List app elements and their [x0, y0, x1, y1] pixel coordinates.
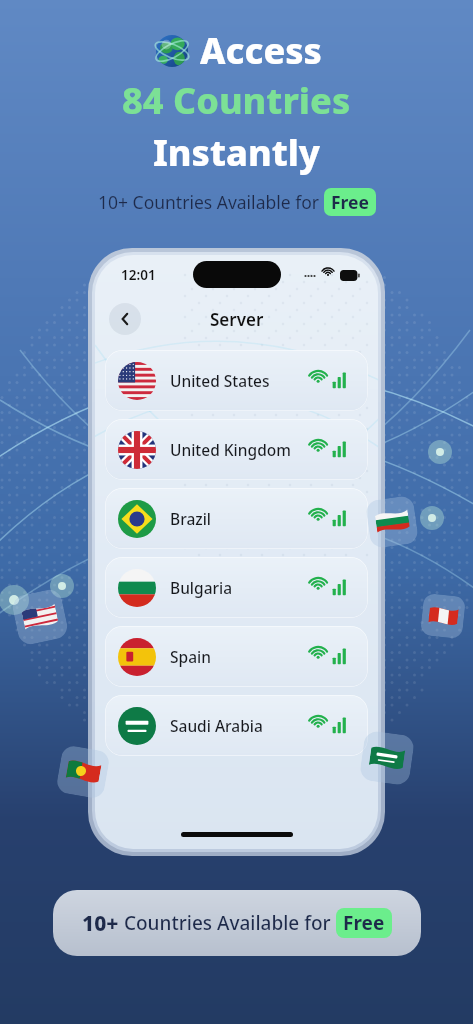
staticText: 10+ Countries Available for — [98, 190, 324, 214]
staticText: Server — [210, 308, 264, 331]
staticText: Instantly — [153, 128, 321, 177]
button[interactable]: Brazil — [105, 488, 368, 549]
staticText: Saudi Arabia — [170, 715, 263, 736]
button[interactable]: Spain — [105, 626, 368, 687]
staticText: Free — [331, 190, 369, 214]
staticText: United Kingdom — [170, 439, 291, 460]
staticText: 12:01 — [121, 266, 156, 284]
button[interactable]: United Kingdom — [105, 419, 368, 480]
staticText: 10+ — [82, 909, 119, 938]
staticText: United States — [170, 370, 270, 391]
button[interactable]: Saudi Arabia — [105, 695, 368, 756]
staticText: 84 Countries — [122, 76, 351, 125]
button[interactable]: United States — [105, 350, 368, 411]
staticText: Free — [343, 910, 385, 936]
staticText: Brazil — [170, 508, 212, 529]
staticText: Bulgaria — [170, 577, 233, 598]
staticText: Access — [200, 26, 322, 75]
staticText: Spain — [170, 646, 211, 667]
staticText: Countries Available for — [119, 910, 336, 936]
button[interactable]: Bulgaria — [105, 557, 368, 618]
button[interactable]: Back — [109, 303, 141, 335]
button[interactable]: 10+ — [53, 890, 421, 956]
